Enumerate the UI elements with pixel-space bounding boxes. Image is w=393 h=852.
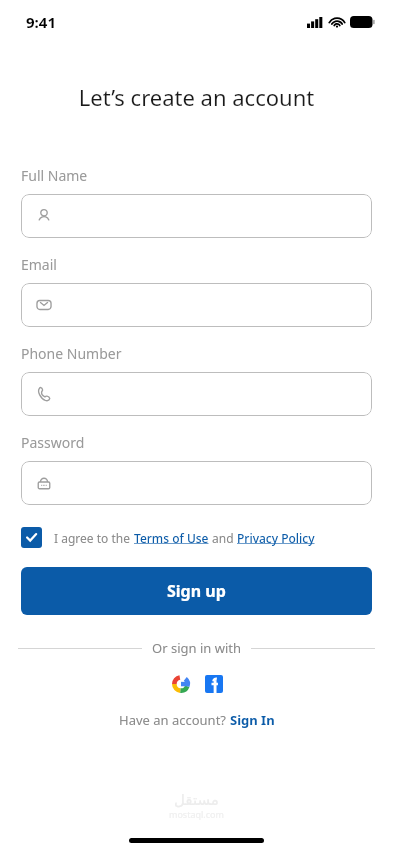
- staticText: Phone Number: [21, 344, 122, 363]
- staticText: Terms of Use: [134, 530, 209, 546]
- button[interactable]: Sign in with Google: [170, 673, 192, 695]
- staticText: Have an account?: [119, 711, 230, 729]
- button[interactable]: Sign In: [230, 711, 275, 729]
- staticText: and: [209, 530, 237, 546]
- staticText: Sign up: [167, 580, 226, 602]
- staticText: mostaql.com: [169, 808, 224, 820]
- button[interactable]: Sign up: [21, 567, 372, 615]
- button[interactable]: [21, 194, 372, 238]
- staticText: Email: [21, 255, 57, 274]
- button[interactable]: Privacy Policy: [237, 530, 315, 546]
- button[interactable]: Agree to terms checkbox: [21, 527, 42, 548]
- staticText: Or sign in with: [152, 639, 241, 657]
- staticText: مستقل: [174, 791, 219, 808]
- staticText: Full Name: [21, 166, 88, 185]
- staticText: Sign In: [230, 711, 275, 729]
- button[interactable]: [21, 461, 372, 505]
- button[interactable]: [21, 283, 372, 327]
- button[interactable]: Terms of Use: [134, 530, 209, 546]
- button[interactable]: [21, 372, 372, 416]
- staticText: Privacy Policy: [237, 530, 315, 546]
- staticText: Password: [21, 433, 85, 452]
- staticText: Let’s create an account: [0, 82, 393, 112]
- staticText: I agree to the: [54, 530, 134, 546]
- button[interactable]: Sign in with Facebook: [204, 674, 224, 694]
- staticText: 9:41: [26, 12, 56, 32]
